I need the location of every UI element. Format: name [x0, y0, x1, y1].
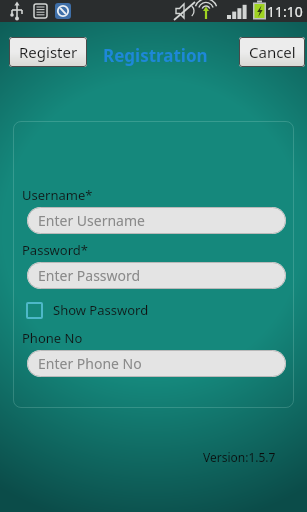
- staticText: Password*: [22, 241, 88, 259]
- staticText: Username*: [22, 186, 93, 204]
- staticText: Register: [19, 42, 78, 62]
- staticText: Enter Username: [38, 211, 145, 230]
- button[interactable]: Show Password: [26, 297, 149, 323]
- staticText: Show Password: [53, 301, 149, 319]
- staticText: Cancel: [249, 42, 296, 62]
- button[interactable]: Cancel: [239, 37, 305, 67]
- staticText: Version:1.5.7: [203, 449, 276, 465]
- button[interactable]: Enter Password: [27, 262, 286, 289]
- button[interactable]: Register: [9, 37, 87, 67]
- button[interactable]: Enter Username: [27, 207, 286, 234]
- staticText: 11:10: [267, 2, 303, 21]
- staticText: Enter Phone No: [38, 354, 142, 373]
- staticText: Enter Password: [38, 266, 141, 285]
- staticText: Registration: [103, 44, 208, 67]
- staticText: Phone No: [22, 329, 83, 347]
- button[interactable]: Enter Phone No: [27, 350, 286, 377]
